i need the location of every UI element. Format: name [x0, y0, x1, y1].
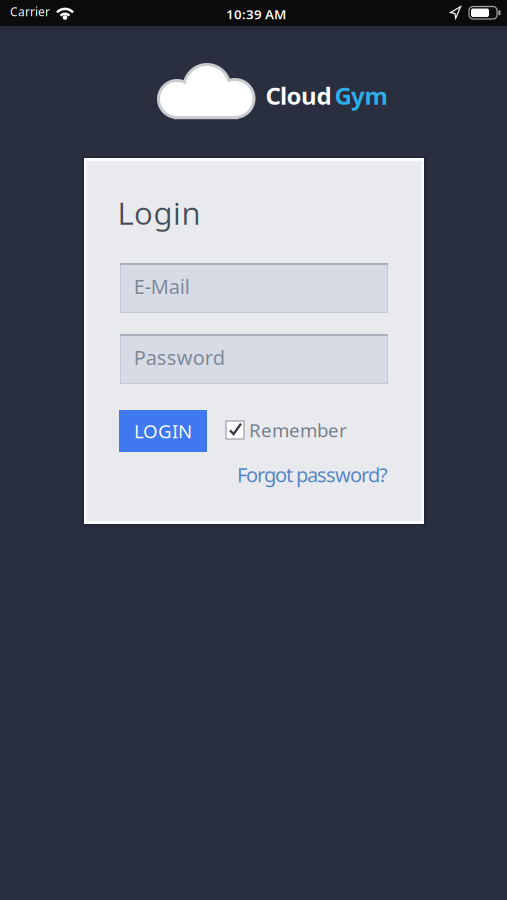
staticText: Remember	[249, 417, 347, 442]
staticText: Carrier	[10, 4, 50, 19]
button[interactable]: LOGIN	[119, 410, 207, 452]
staticText: E-Mail	[134, 273, 190, 300]
staticText: Password	[134, 344, 225, 371]
staticText: Cloud	[265, 79, 331, 111]
staticText: LOGIN	[134, 419, 192, 443]
button[interactable]: Remember	[226, 421, 342, 446]
staticText: 10:39 AM	[226, 5, 286, 23]
button[interactable]: Forgot password?	[84, 461, 388, 488]
staticText: Login	[117, 192, 200, 233]
button[interactable]: E-Mail	[120, 263, 388, 313]
button[interactable]: Password	[120, 334, 388, 384]
staticText: Forgot password?	[237, 461, 388, 488]
staticText: Gym	[334, 79, 387, 111]
